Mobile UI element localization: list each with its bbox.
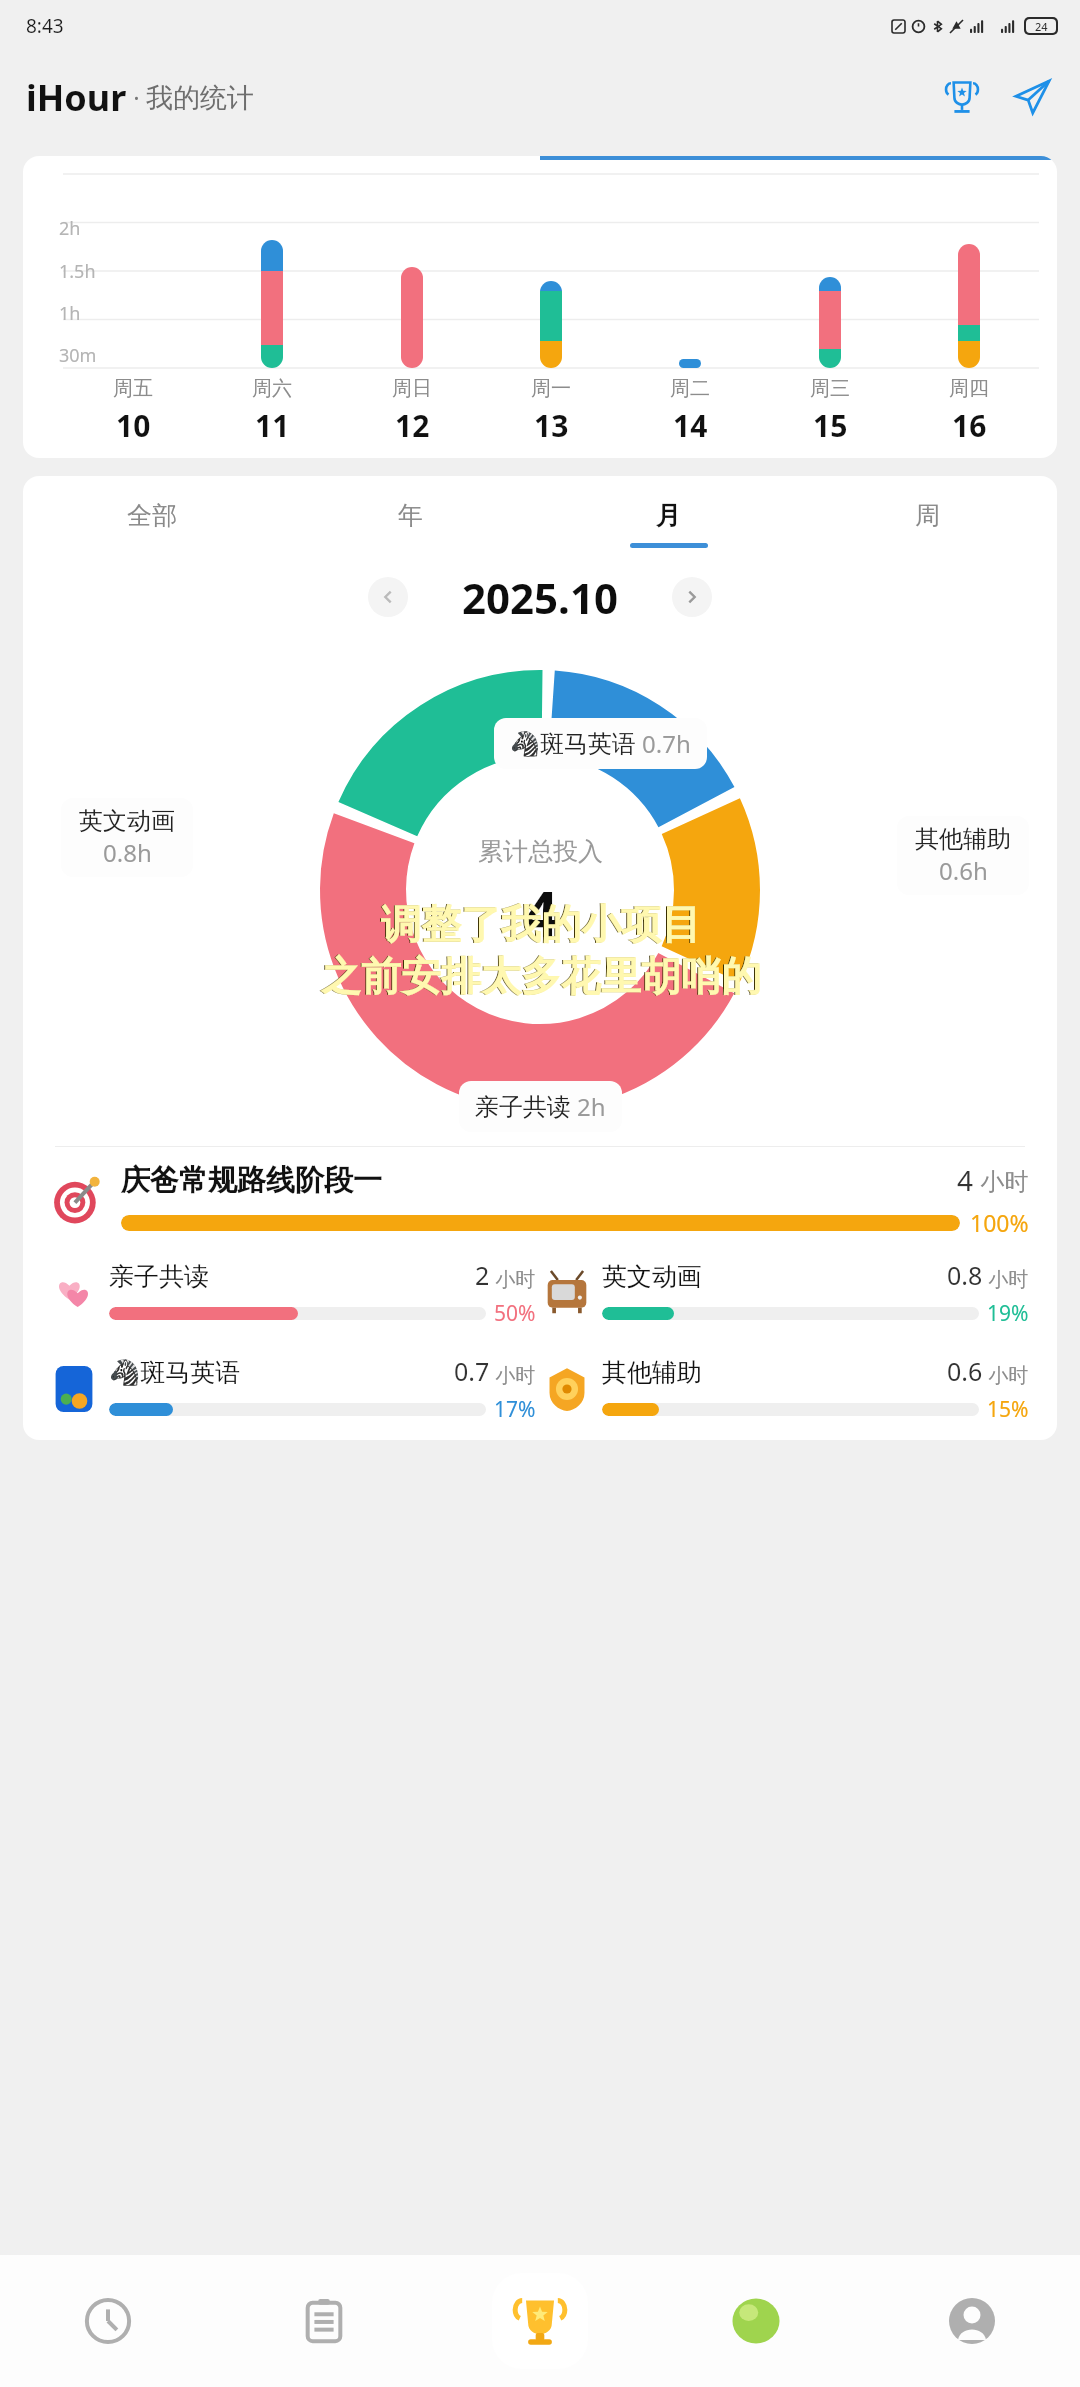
button[interactable]: 其他辅助 [540, 1348, 1033, 1430]
staticText: 我的统计 [146, 81, 254, 115]
button[interactable]: 月 [539, 476, 798, 554]
staticText: 12 [395, 405, 430, 446]
staticText: 19% [987, 1299, 1029, 1328]
staticText: 16 [952, 405, 987, 446]
staticText: 小时 [983, 1361, 1029, 1388]
staticText: 0.7 [454, 1354, 490, 1388]
staticText: 2025.10 [462, 569, 618, 626]
staticText: 14 [673, 405, 708, 446]
button[interactable]: 庆爸常规路线阶段一 [23, 1147, 1057, 1252]
staticText: 庆爸常规路线阶段一 [121, 1162, 382, 1199]
staticText: 10 [116, 405, 151, 446]
staticText: 11 [255, 405, 290, 446]
staticText: 年 [398, 500, 423, 531]
button[interactable]: 全部 [23, 476, 281, 554]
button[interactable]: Achievements [940, 75, 984, 119]
staticText: 1.5h [59, 259, 96, 284]
staticText: 15 [813, 405, 848, 446]
staticText: 周日 [392, 376, 432, 401]
button[interactable]: Next month [672, 577, 712, 617]
button[interactable]: Share [1010, 75, 1054, 119]
staticText: 全部 [127, 500, 177, 531]
staticText: 之前安排太多花里胡哨的 [320, 951, 760, 1001]
button[interactable]: Profile [924, 2273, 1020, 2369]
staticText: 小时 [490, 1265, 536, 1292]
staticText: 其他辅助 [915, 824, 1011, 854]
staticText: 周二 [670, 376, 710, 401]
staticText: 0.6h [939, 854, 988, 887]
staticText: 8:43 [26, 13, 64, 39]
staticText: 🦓斑马英语 [109, 1357, 241, 1388]
staticText: 2h [59, 216, 81, 241]
staticText: 15% [987, 1395, 1029, 1424]
staticText: 调整了我的小项目 [381, 899, 701, 949]
staticText: 50% [494, 1299, 536, 1328]
staticText: 周六 [252, 376, 292, 401]
staticText: 周五 [113, 376, 153, 401]
button[interactable]: Records [276, 2273, 372, 2369]
staticText: 小时 [974, 1164, 1029, 1197]
staticText: 亲子共读 [109, 1261, 209, 1292]
staticText: 17% [494, 1395, 536, 1424]
staticText: 周一 [531, 376, 571, 401]
staticText: 亲子共读 [475, 1092, 571, 1122]
staticText: 调整了我的小项目 [380, 899, 700, 949]
staticText: 累计总投入 [478, 836, 603, 867]
staticText: 0.7h [642, 727, 691, 760]
staticText: 小时 [983, 1265, 1029, 1292]
button[interactable]: 亲子共读 [47, 1252, 540, 1334]
staticText: 30m [59, 343, 97, 368]
staticText: 英文动画 [602, 1261, 702, 1292]
staticText: 0.8h [103, 836, 152, 869]
staticText: 2 [475, 1258, 490, 1292]
button[interactable]: 年 [281, 476, 539, 554]
staticText: 4 [523, 871, 559, 955]
button[interactable]: 周 [798, 476, 1057, 554]
staticText: 0.8 [947, 1258, 983, 1292]
staticText: 100% [970, 1207, 1029, 1238]
staticText: 其他辅助 [602, 1357, 702, 1388]
staticText: 1h [59, 301, 81, 326]
staticText: 0.6 [947, 1354, 983, 1388]
button[interactable]: Timer [60, 2273, 156, 2369]
button[interactable]: 🦓斑马英语 [47, 1348, 540, 1430]
staticText: iHour [26, 73, 127, 122]
staticText: 13 [534, 405, 569, 446]
staticText: 小时 [490, 1361, 536, 1388]
staticText: 之前安排太多花里胡哨的 [321, 951, 761, 1001]
staticText: 周四 [949, 376, 989, 401]
button[interactable]: Plant [708, 2273, 804, 2369]
staticText: 24 [1035, 19, 1048, 33]
staticText: 周 [915, 500, 940, 531]
staticText: 4 [957, 1161, 974, 1199]
staticText: 🦓斑马英语 [510, 729, 636, 759]
staticText: 英文动画 [79, 806, 175, 836]
button[interactable]: Previous month [368, 577, 408, 617]
staticText: 月 [656, 500, 681, 531]
staticText: · [127, 81, 146, 114]
staticText: 周三 [810, 376, 850, 401]
staticText: 2h [577, 1090, 606, 1123]
button[interactable]: Achievements [492, 2273, 588, 2369]
button[interactable]: 英文动画 [540, 1252, 1033, 1334]
